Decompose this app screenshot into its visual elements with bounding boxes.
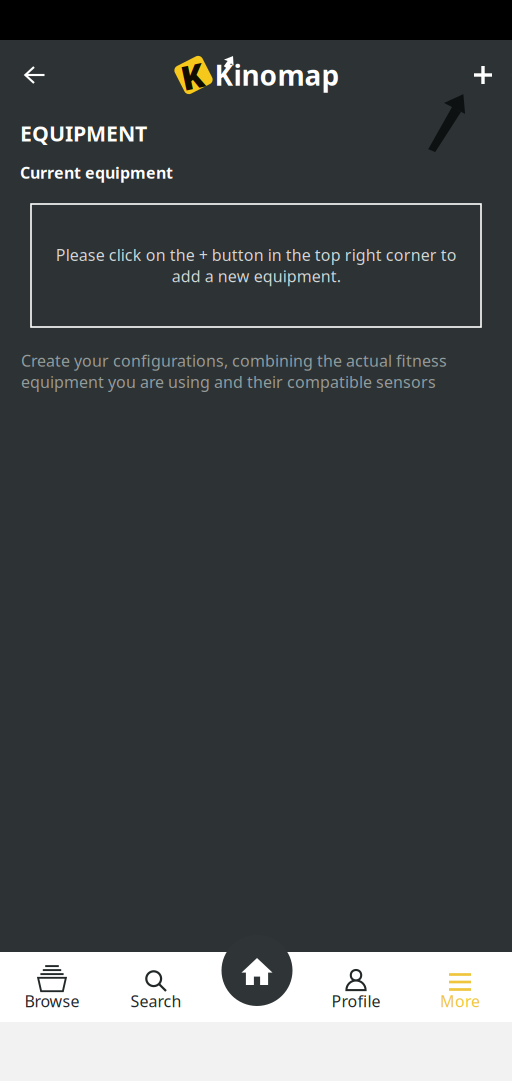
button[interactable]: Browse	[0, 952, 104, 1022]
staticText: Please click on the + button in the top …	[55, 244, 456, 287]
button[interactable]: Profile	[304, 952, 408, 1022]
button[interactable]: More	[408, 952, 512, 1022]
staticText: Search	[130, 990, 181, 1012]
staticText: EQUIPMENT	[20, 119, 147, 147]
button[interactable]: Home	[221, 935, 292, 1006]
staticText: Profile	[331, 990, 380, 1012]
button[interactable]: Search	[104, 952, 208, 1022]
staticText: Create your configurations, combining th…	[21, 350, 447, 392]
button[interactable]: Add equipment	[455, 52, 511, 98]
staticText: Current equipment	[20, 162, 173, 183]
staticText: K	[181, 54, 204, 98]
staticText: More	[440, 990, 480, 1012]
button[interactable]: Back	[7, 52, 63, 98]
staticText: Kinomap	[214, 56, 339, 94]
staticText: Browse	[24, 990, 79, 1012]
